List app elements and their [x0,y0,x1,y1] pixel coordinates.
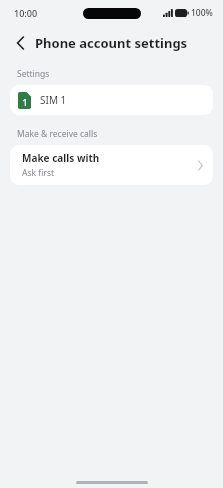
staticText: Settings [17,68,50,80]
staticText: Make calls with [22,151,100,165]
button[interactable]: 1 [10,85,213,115]
staticText: 1 [22,96,28,108]
staticText: Phone account settings [35,34,188,52]
staticText: 100% [191,7,213,19]
button[interactable]: Make calls with [10,145,213,185]
button[interactable]: Back [8,31,32,55]
staticText: SIM 1 [40,93,67,107]
staticText: Ask first [22,167,55,179]
staticText: 10:00 [14,7,38,19]
staticText: Make & receive calls [17,128,98,140]
